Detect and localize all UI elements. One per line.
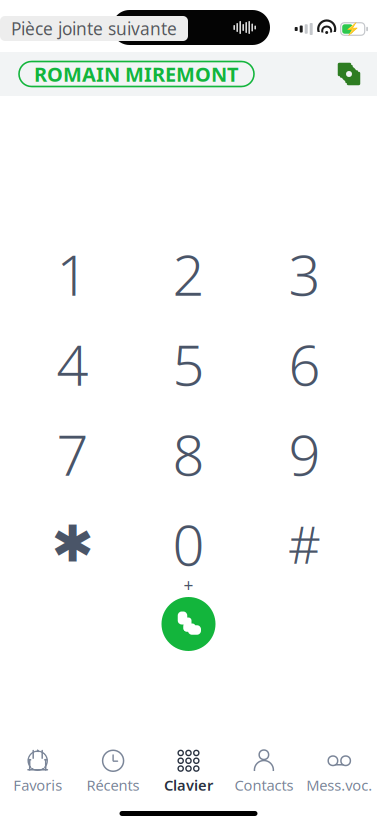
staticText: ROMAIN MIREMONT — [34, 61, 239, 87]
button[interactable]: Clavier — [151, 747, 226, 797]
staticText: ✱ — [51, 515, 93, 573]
staticText: Favoris — [13, 775, 62, 795]
staticText: + — [183, 574, 193, 597]
staticText: 5 — [172, 327, 204, 401]
button[interactable]: 6 — [259, 328, 349, 400]
button[interactable]: Mess.voc. — [302, 747, 377, 797]
staticText: ⚡ — [345, 22, 360, 36]
staticText: # — [288, 510, 321, 578]
staticText: Récents — [87, 775, 140, 795]
button[interactable]: 2 — [143, 238, 233, 310]
button[interactable]: 4 — [27, 328, 117, 400]
button[interactable]: 9 — [259, 418, 349, 490]
button[interactable]: ✱ — [27, 508, 117, 580]
button[interactable]: 7 — [27, 418, 117, 490]
staticText: 6 — [288, 327, 320, 401]
staticText: 1 — [56, 237, 88, 311]
button[interactable]: Favoris — [0, 747, 75, 797]
staticText: 2 — [172, 237, 204, 311]
button[interactable]: Réglages — [329, 54, 369, 94]
staticText: Mess.voc. — [306, 775, 372, 795]
button[interactable]: Récents — [75, 747, 151, 797]
button[interactable]: # — [259, 508, 349, 580]
button[interactable]: Contacts — [226, 747, 302, 797]
staticText: 0 — [172, 507, 204, 581]
staticText: 3 — [288, 237, 320, 311]
button[interactable]: 5 — [143, 328, 233, 400]
staticText: 7 — [56, 417, 88, 491]
staticText: 4 — [56, 327, 88, 401]
button[interactable]: 1 — [27, 238, 117, 310]
button[interactable]: ROMAIN MIREMONT — [19, 61, 254, 86]
staticText: Clavier — [164, 775, 213, 795]
staticText: 9 — [288, 417, 320, 491]
button[interactable]: 0 — [143, 508, 233, 580]
button[interactable]: Appeler — [152, 588, 224, 660]
staticText: Contacts — [234, 775, 293, 795]
button[interactable]: 3 — [259, 238, 349, 310]
staticText: Pièce jointe suivante — [11, 17, 177, 40]
button[interactable]: 8 — [143, 418, 233, 490]
staticText: 8 — [172, 417, 204, 491]
